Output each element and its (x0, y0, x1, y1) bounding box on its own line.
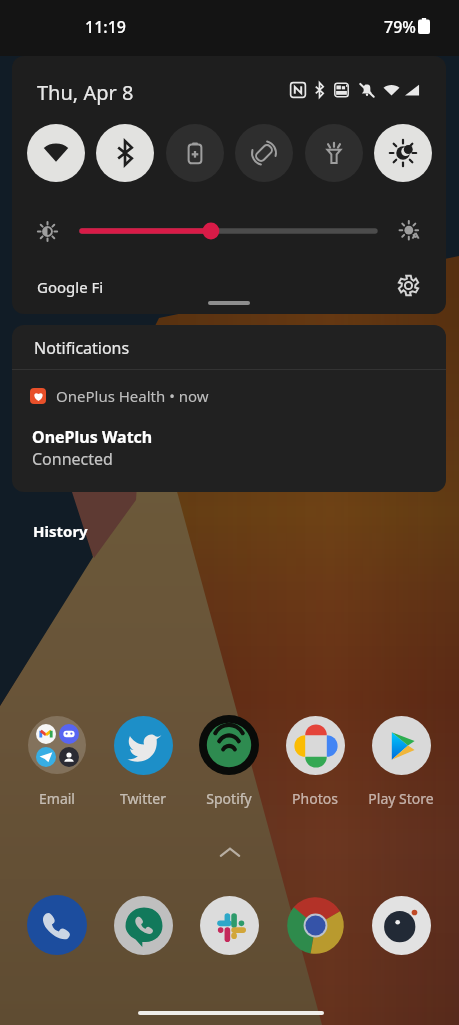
button[interactable]: Flashlight (305, 124, 363, 182)
staticText: Notifications (34, 337, 130, 359)
staticText: OnePlus Watch (32, 426, 153, 448)
staticText: Play Store (361, 789, 441, 808)
button[interactable]: Settings (394, 271, 422, 299)
button[interactable]: Battery saver (166, 124, 224, 182)
button[interactable]: Chrome (281, 891, 349, 959)
button[interactable]: Spotify (189, 715, 269, 808)
button[interactable]: Messages (109, 891, 177, 959)
button[interactable]: Auto-rotate (235, 124, 293, 182)
button[interactable]: Email (17, 715, 97, 808)
button[interactable]: Wi-Fi (27, 124, 85, 182)
staticText: OnePlus Health • now (56, 386, 209, 406)
staticText: Connected (32, 448, 113, 470)
button[interactable]: Google Fi (37, 277, 104, 297)
staticText: 11:19 (85, 16, 126, 38)
staticText: 79% (384, 16, 416, 38)
button[interactable]: Brightness slider (70, 221, 375, 241)
staticText: History (33, 521, 88, 541)
button[interactable]: Camera (367, 891, 435, 959)
button[interactable]: Twitter (103, 715, 183, 808)
button[interactable]: Slack (195, 891, 263, 959)
button[interactable]: Brightness (374, 124, 432, 182)
button[interactable]: Phone (23, 891, 91, 959)
staticText: Spotify (189, 789, 269, 808)
button[interactable]: Photos (275, 715, 355, 808)
staticText: Thu, Apr 8 (37, 79, 134, 106)
button[interactable]: Bluetooth (96, 124, 154, 182)
button[interactable]: Open app drawer (220, 846, 240, 858)
button[interactable]: Play Store (361, 715, 441, 808)
staticText: Photos (275, 789, 355, 808)
staticText: Twitter (103, 789, 183, 808)
staticText: Email (17, 789, 97, 808)
button[interactable]: OnePlus Health • now (12, 370, 446, 492)
